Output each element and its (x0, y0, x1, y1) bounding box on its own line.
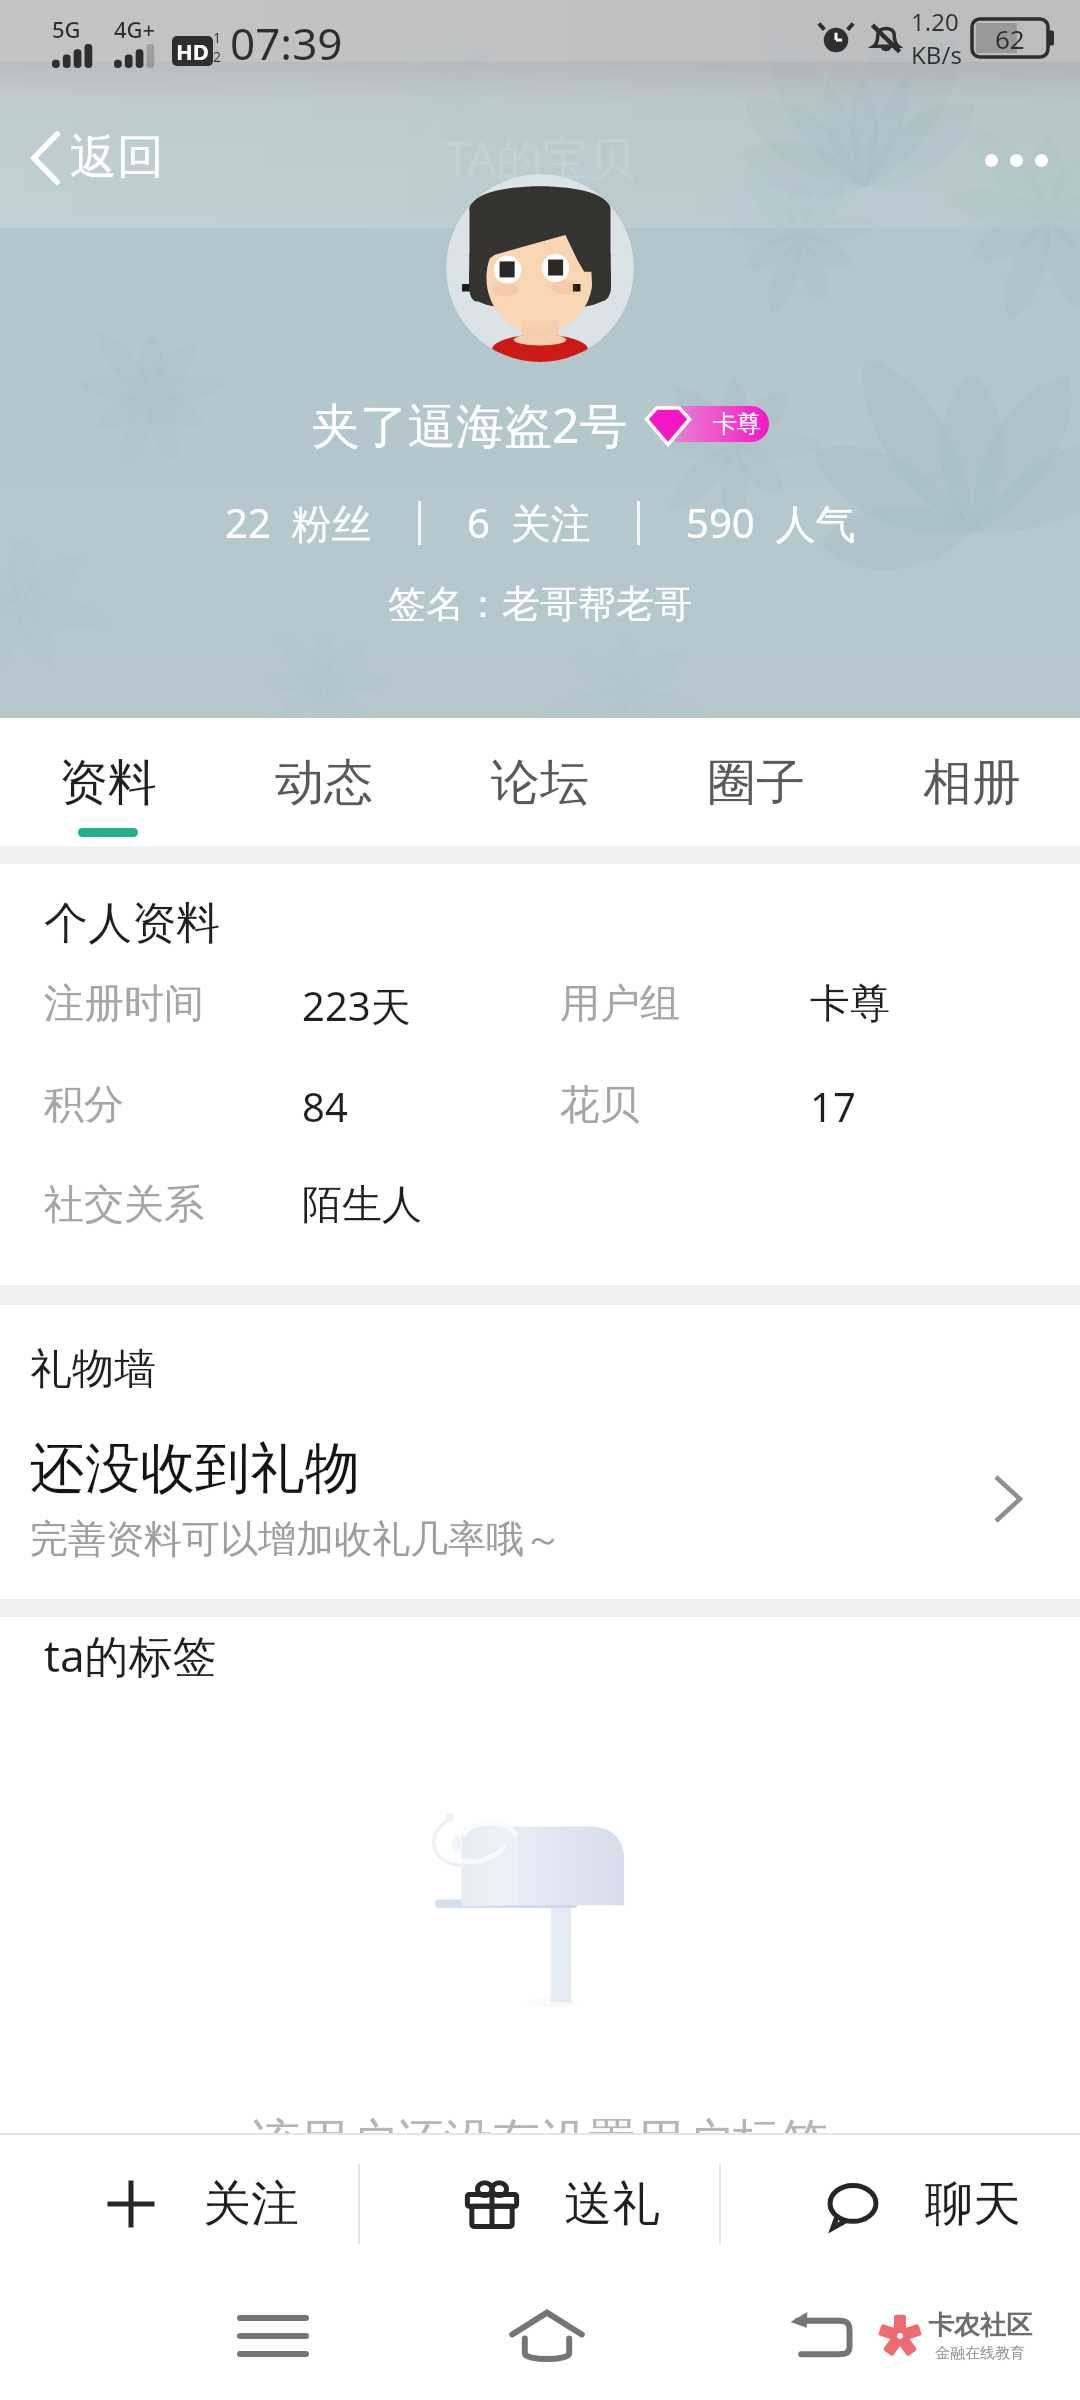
staticText: 22 粉丝 (225, 495, 372, 550)
staticText: KB/s (911, 38, 962, 71)
button[interactable]: VIP badge (644, 401, 769, 449)
staticText: 4G+ (114, 14, 156, 44)
button[interactable]: Avatar (446, 174, 634, 362)
button[interactable]: 论坛 (432, 718, 648, 846)
button[interactable]: Home (410, 2272, 684, 2400)
button[interactable]: 关注 (0, 2135, 358, 2272)
staticText: 动态 (275, 752, 373, 814)
staticText: 论坛 (491, 752, 589, 814)
staticText: 花贝 (560, 1079, 640, 1129)
staticText: 圈子 (707, 752, 805, 814)
staticText: 该用户还没有设置用户标签 (252, 2112, 828, 2172)
button[interactable]: 聊天 (721, 2135, 1080, 2272)
staticText: 个人资料 (44, 896, 220, 951)
button[interactable]: 送礼 (360, 2135, 719, 2272)
staticText: 62 (995, 21, 1025, 56)
staticText: 注册时间 (44, 978, 204, 1028)
staticText: 签名：老哥帮老哥 (388, 580, 692, 628)
button[interactable]: Back (684, 2272, 958, 2400)
staticText: 资料 (59, 752, 157, 814)
button[interactable]: 动态 (216, 718, 432, 846)
staticText: 礼物墙 (30, 1343, 156, 1396)
staticText: HD (176, 36, 209, 66)
staticText: 6 关注 (467, 495, 591, 550)
button[interactable]: 返回 (0, 120, 190, 195)
staticText: 卡尊 (810, 978, 890, 1028)
staticText: TA的宝贝 (445, 126, 635, 189)
staticText: 1 (213, 28, 222, 47)
staticText: 完善资料可以增加收礼几率哦～ (30, 1515, 562, 1563)
staticText: 卡农社区 (928, 2309, 1032, 2342)
staticText: 相册 (923, 752, 1021, 814)
staticText: 返回 (70, 128, 164, 187)
staticText: 17 (810, 1079, 856, 1133)
staticText: 夹了逼海盗2号 (312, 392, 628, 458)
staticText: 用户组 (560, 978, 680, 1028)
button[interactable]: Recents (135, 2272, 410, 2400)
staticText: 07:39 (230, 13, 343, 73)
staticText: 590 人气 (686, 495, 856, 550)
staticText: 卡尊 (713, 409, 761, 439)
staticText: 送礼 (564, 2174, 660, 2234)
staticText: ta的标签 (44, 1625, 217, 1685)
staticText: 社交关系 (44, 1179, 204, 1229)
staticText: 积分 (44, 1079, 124, 1129)
button[interactable]: 礼物墙 (0, 1305, 1080, 1599)
staticText: 聊天 (925, 2174, 1021, 2234)
staticText: 2 (213, 47, 222, 66)
staticText: 金融在线教育 (935, 2344, 1025, 2363)
button[interactable]: 圈子 (648, 718, 864, 846)
staticText: 关注 (203, 2174, 299, 2234)
staticText: 5G (52, 14, 81, 44)
button[interactable]: 相册 (864, 718, 1080, 846)
staticText: 84 (302, 1079, 348, 1133)
staticText: 223天 (302, 978, 411, 1033)
staticText: 还没收到礼物 (30, 1434, 360, 1503)
staticText: 1.20 (911, 5, 959, 38)
staticText: 陌生人 (302, 1179, 422, 1229)
button[interactable]: 资料 (0, 718, 216, 846)
button[interactable]: More options (953, 128, 1080, 193)
